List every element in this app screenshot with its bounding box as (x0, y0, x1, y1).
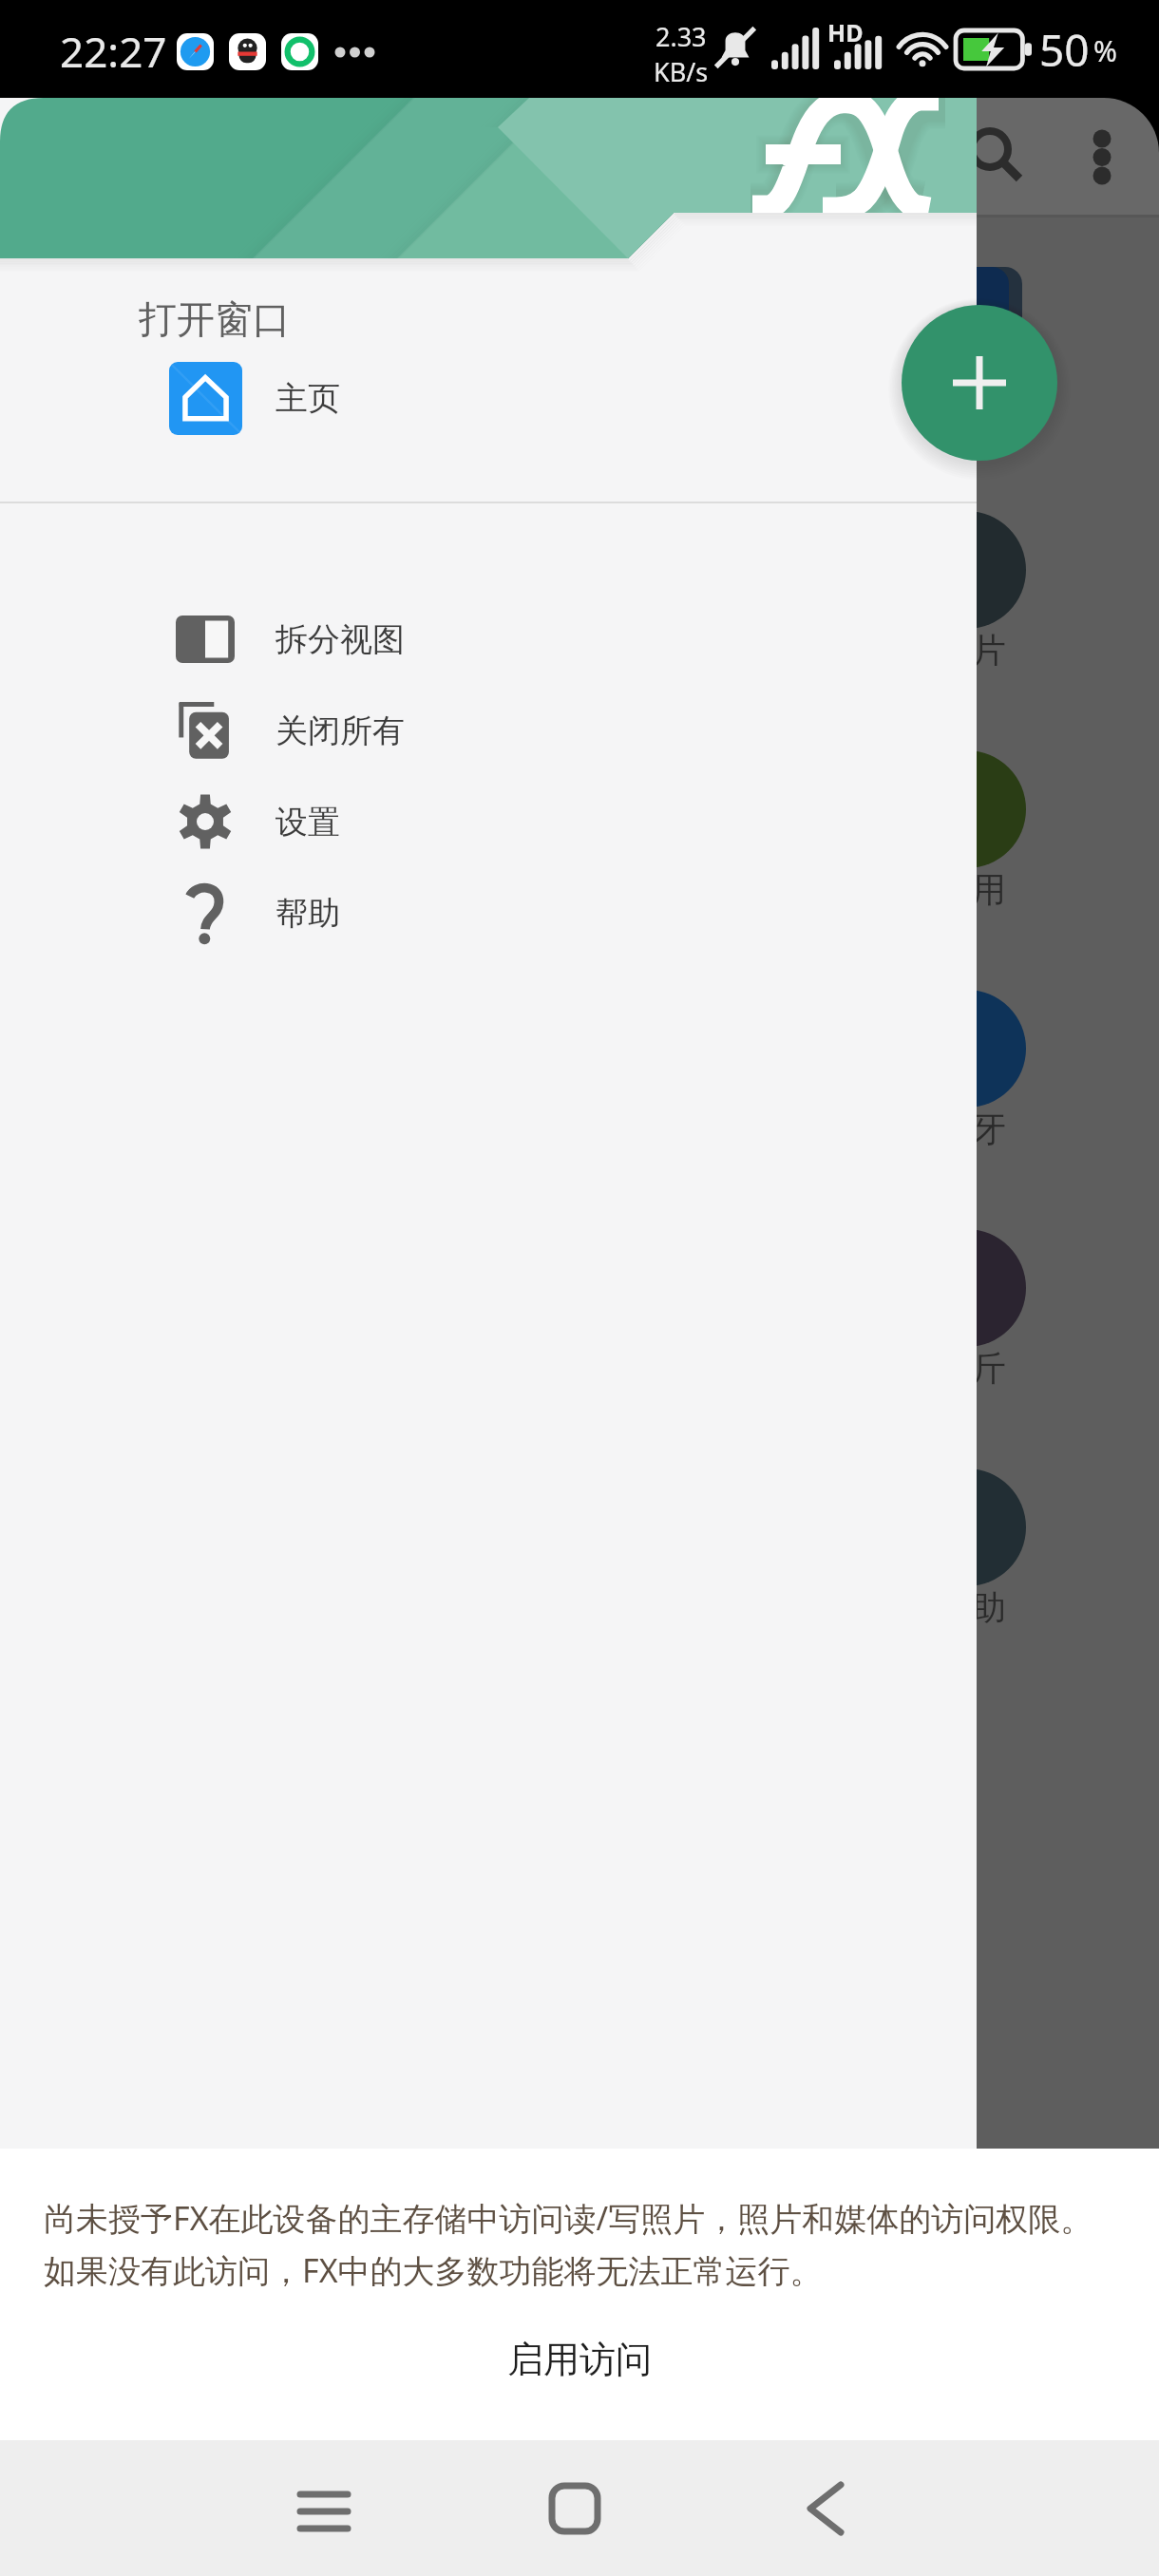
button[interactable]: 启用访问 (0, 2317, 1159, 2402)
staticText: 助 (972, 1586, 1006, 1629)
staticText: 主页 (275, 378, 340, 419)
staticText: 22:27 (60, 23, 167, 80)
button[interactable]: 主页 (0, 356, 977, 440)
staticText: HD (827, 16, 864, 48)
staticText: 帮助 (275, 893, 340, 934)
staticText: % (1093, 31, 1117, 70)
staticText: 设置 (275, 802, 340, 843)
button[interactable]: New window (902, 305, 1057, 461)
button[interactable]: 帮助 (0, 867, 977, 958)
button[interactable]: 关闭所有 (0, 685, 977, 776)
staticText: 牙 (972, 1108, 1006, 1150)
staticText: 片 (972, 629, 1006, 672)
staticText: 斤 (972, 1347, 1006, 1390)
staticText: KB/s (654, 54, 709, 89)
staticText: 打开窗口 (139, 295, 291, 343)
button[interactable]: 设置 (0, 776, 977, 867)
staticText: 尚未授予FX在此设备的主存储中访问读/写照片，照片和媒体的访问权限。 如果没有此… (44, 2196, 1093, 2292)
staticText: 启用访问 (507, 2337, 652, 2382)
staticText: 2.33 (655, 19, 707, 54)
button[interactable]: Home (518, 2440, 632, 2576)
staticText: 50 (1039, 20, 1090, 80)
button[interactable]: Back (769, 2440, 883, 2576)
staticText: 关闭所有 (275, 710, 405, 751)
button[interactable]: 拆分视图 (0, 594, 977, 685)
button[interactable]: Recents (267, 2440, 381, 2576)
staticText: 用 (972, 868, 1006, 911)
staticText: 拆分视图 (275, 619, 405, 660)
